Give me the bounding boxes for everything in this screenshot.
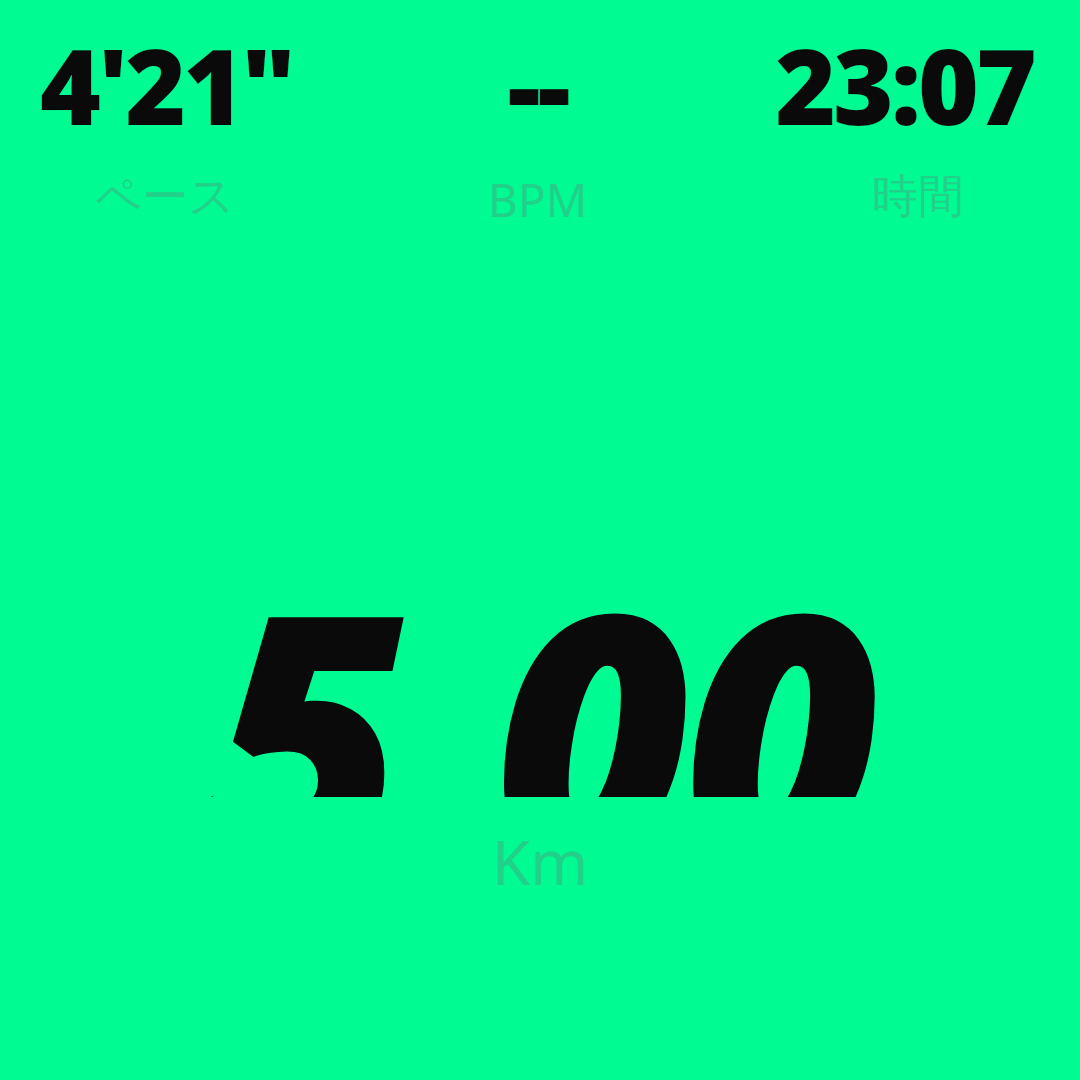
button[interactable]: 23:07 [703,14,1034,226]
staticText: 5.00 [0,497,1080,797]
button[interactable]: -- [372,14,703,231]
staticText: 4'21" [40,14,372,156]
staticText: -- [372,14,703,156]
staticText: 時間 [802,168,1034,226]
staticText: 23:07 [703,14,1034,156]
staticText: ペース [40,168,290,226]
button[interactable]: 4'21" [40,14,372,226]
staticText: BPM [372,168,703,231]
button[interactable]: Distance 5.00 kilometres [0,497,1080,903]
staticText: Km [0,819,1080,903]
